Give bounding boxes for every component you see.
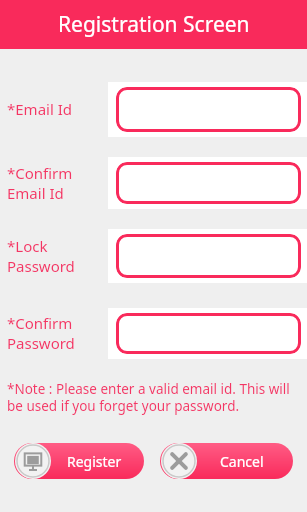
staticText: *Note : Please enter a valid email id. T…	[7, 380, 303, 415]
staticText: Password	[7, 333, 75, 353]
staticText: *Lock	[7, 236, 48, 256]
button[interactable]: *Lock Password	[116, 234, 301, 278]
staticText: *Confirm	[7, 163, 73, 183]
button[interactable]: Cancel	[160, 443, 293, 479]
staticText: Password	[7, 256, 75, 276]
staticText: Register	[67, 452, 122, 471]
button[interactable]: *Email Id	[116, 87, 301, 132]
button[interactable]: *Confirm Password	[116, 313, 301, 354]
staticText: Cancel	[220, 452, 264, 471]
button[interactable]: Register	[14, 443, 144, 479]
staticText: *Email Id	[7, 99, 72, 119]
staticText: Email Id	[7, 183, 64, 203]
staticText: Registration Screen	[58, 10, 250, 39]
staticText: *Confirm	[7, 313, 73, 333]
button[interactable]: *Confirm Email Id	[116, 162, 301, 204]
